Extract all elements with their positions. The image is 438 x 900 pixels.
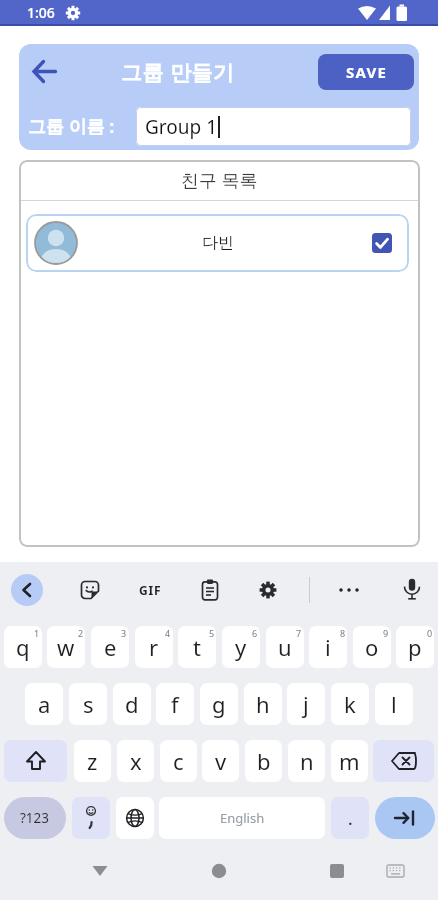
- staticText: u: [278, 632, 292, 662]
- staticText: p: [408, 632, 422, 662]
- staticText: a: [38, 689, 51, 719]
- staticText: b: [257, 746, 271, 776]
- staticText: 0: [427, 627, 433, 639]
- staticText: c: [173, 746, 184, 776]
- button[interactable]: d: [113, 683, 151, 725]
- button[interactable]: [373, 740, 434, 782]
- button[interactable]: e: [91, 626, 129, 668]
- button[interactable]: SAVE: [318, 54, 414, 90]
- staticText: 8: [340, 627, 346, 639]
- button[interactable]: f: [156, 683, 194, 725]
- button[interactable]: t: [178, 626, 216, 668]
- staticText: Group 1: [145, 114, 218, 140]
- button[interactable]: s: [69, 683, 107, 725]
- button[interactable]: ?123: [4, 797, 66, 839]
- button[interactable]: o: [353, 626, 391, 668]
- button[interactable]: a: [25, 683, 63, 725]
- staticText: j: [303, 689, 309, 719]
- staticText: 다빈: [202, 233, 234, 253]
- button[interactable]: x: [117, 740, 154, 782]
- button[interactable]: 다빈: [26, 214, 409, 272]
- button[interactable]: h: [244, 683, 282, 725]
- staticText: 3: [121, 627, 127, 639]
- button[interactable]: p: [396, 626, 434, 668]
- button[interactable]: l: [375, 683, 413, 725]
- button[interactable]: w: [47, 626, 85, 668]
- button[interactable]: [375, 797, 435, 839]
- staticText: 그룹 이름 :: [28, 114, 115, 139]
- button[interactable]: [199, 578, 221, 602]
- staticText: 그룹 만들기: [121, 58, 235, 87]
- staticText: 7: [296, 627, 302, 639]
- button[interactable]: Group 1: [136, 107, 411, 146]
- staticText: ?123: [20, 809, 50, 827]
- button[interactable]: GIF: [132, 578, 168, 602]
- staticText: e: [104, 632, 117, 662]
- button[interactable]: [401, 577, 423, 603]
- staticText: 친구 목록: [181, 168, 258, 193]
- staticText: y: [235, 632, 247, 662]
- button[interactable]: [29, 53, 75, 93]
- staticText: w: [57, 632, 75, 662]
- staticText: s: [83, 689, 94, 719]
- staticText: SAVE: [346, 62, 387, 82]
- staticText: 1: [34, 627, 40, 639]
- button[interactable]: [372, 233, 392, 253]
- button[interactable]: [4, 740, 67, 782]
- button[interactable]: v: [202, 740, 239, 782]
- button[interactable]: m: [331, 740, 368, 782]
- button[interactable]: z: [74, 740, 111, 782]
- button[interactable]: [336, 578, 362, 602]
- staticText: 5: [209, 627, 215, 639]
- staticText: z: [87, 746, 98, 776]
- button[interactable]: [257, 579, 279, 601]
- button[interactable]: k: [331, 683, 369, 725]
- button[interactable]: [116, 797, 154, 839]
- button[interactable]: g: [200, 683, 238, 725]
- button[interactable]: y: [222, 626, 260, 668]
- staticText: h: [256, 689, 270, 719]
- button[interactable]: .: [331, 797, 369, 839]
- button[interactable]: [78, 578, 102, 602]
- button[interactable]: [199, 851, 239, 891]
- staticText: f: [171, 689, 179, 719]
- button[interactable]: j: [287, 683, 325, 725]
- staticText: d: [125, 689, 139, 719]
- button[interactable]: q: [4, 626, 42, 668]
- button[interactable]: [80, 851, 120, 891]
- staticText: v: [215, 746, 227, 776]
- staticText: GIF: [139, 582, 162, 598]
- staticText: n: [300, 746, 314, 776]
- button[interactable]: r: [135, 626, 173, 668]
- button[interactable]: u: [266, 626, 304, 668]
- button[interactable]: [11, 574, 43, 606]
- staticText: i: [325, 632, 331, 662]
- staticText: l: [391, 689, 397, 719]
- staticText: 1:06: [27, 3, 55, 22]
- staticText: m: [339, 746, 360, 776]
- staticText: k: [344, 689, 356, 719]
- button[interactable]: c: [160, 740, 197, 782]
- button[interactable]: n: [288, 740, 325, 782]
- staticText: t: [193, 632, 201, 662]
- staticText: 4: [165, 627, 171, 639]
- button[interactable]: [317, 851, 357, 891]
- staticText: 2: [78, 627, 84, 639]
- button[interactable]: English: [159, 797, 325, 839]
- staticText: q: [16, 632, 30, 662]
- staticText: x: [130, 746, 142, 776]
- button[interactable]: i: [309, 626, 347, 668]
- button[interactable]: b: [245, 740, 282, 782]
- staticText: 6: [252, 627, 258, 639]
- staticText: English: [220, 809, 265, 827]
- staticText: .: [348, 807, 353, 830]
- staticText: 9: [383, 627, 389, 639]
- staticText: g: [212, 689, 226, 719]
- button[interactable]: [72, 797, 110, 839]
- staticText: o: [365, 632, 379, 662]
- staticText: r: [149, 632, 159, 662]
